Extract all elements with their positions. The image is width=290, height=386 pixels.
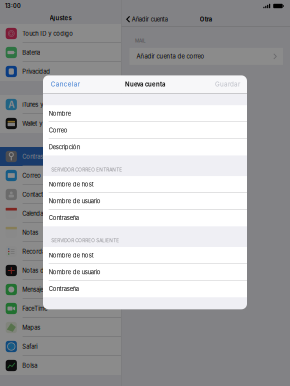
staticText: Añadir cuenta de correo — [136, 53, 204, 60]
staticText: Mapas — [22, 324, 40, 331]
staticText: Otra — [200, 16, 212, 23]
staticText: Nombre — [49, 110, 71, 117]
button[interactable]: Contraseñas y cuentas — [0, 147, 121, 166]
staticText: A — [8, 99, 14, 110]
staticText: FaceTime — [22, 305, 47, 312]
staticText: Contactos — [22, 191, 50, 198]
staticText: Touch ID y código — [22, 30, 73, 37]
button[interactable]: A — [0, 95, 121, 114]
button[interactable]: Notas de voz — [0, 261, 121, 280]
button[interactable]: Safari — [0, 337, 121, 356]
staticText: Notas de voz — [22, 267, 58, 274]
staticText: Correo — [49, 127, 68, 134]
button[interactable]: Privacidad — [0, 62, 121, 81]
button[interactable]: Guardar — [215, 80, 240, 88]
button[interactable]: Cancelar — [51, 80, 80, 88]
staticText: Correo — [22, 172, 41, 179]
staticText: Recordatorios — [22, 248, 61, 255]
staticText: Contraseña — [49, 214, 79, 221]
staticText: iTunes y App Store — [22, 101, 74, 108]
staticText: Contraseña — [49, 285, 79, 292]
staticText: Calendario — [22, 210, 50, 217]
button[interactable]: Bolsa — [0, 356, 121, 375]
button[interactable]: Mensajes — [0, 280, 121, 299]
staticText: Cancelar — [51, 80, 80, 88]
button[interactable]: Wallet y Apple Pay — [0, 114, 121, 133]
staticText: 13:00 — [5, 3, 21, 9]
button[interactable]: Mapas — [0, 318, 121, 337]
button[interactable]: Notas — [0, 223, 121, 242]
button[interactable]: Touch ID y código — [0, 24, 121, 43]
staticText: Batería — [22, 49, 40, 56]
button[interactable]: FaceTime — [0, 299, 121, 318]
staticText: Añadir cuenta — [132, 16, 168, 23]
staticText: Nombre de usuario — [49, 198, 101, 205]
staticText: Contraseñas y cuentas — [22, 153, 82, 160]
staticText: Descripción — [49, 143, 80, 151]
staticText: Mensajes — [22, 286, 46, 293]
button[interactable]: Contactos — [0, 185, 121, 204]
button[interactable]: Batería — [0, 43, 121, 62]
button[interactable]: Recordatorios — [0, 242, 121, 261]
staticText: Notas — [22, 229, 38, 236]
button[interactable]: Calendario — [0, 204, 121, 223]
staticText: Privacidad — [22, 68, 50, 75]
staticText: Wallet y Apple Pay — [22, 120, 72, 127]
staticText: Nombre de host — [49, 181, 94, 188]
button[interactable]: Añadir cuenta — [126, 16, 168, 23]
staticText: MAIL — [135, 38, 146, 44]
staticText: SERVIDOR CORREO SALIENTE — [51, 238, 119, 243]
staticText: SERVIDOR CORREO ENTRANTE — [51, 167, 122, 172]
staticText: Nueva cuenta — [125, 81, 165, 88]
staticText: Safari — [22, 343, 37, 350]
staticText: Ajustes — [49, 14, 71, 22]
staticText: Bolsa — [22, 362, 37, 369]
staticText: Guardar — [215, 80, 240, 88]
button[interactable]: Correo — [0, 166, 121, 185]
staticText: Nombre de host — [49, 252, 94, 259]
button[interactable]: Añadir cuenta de correo — [129, 48, 283, 65]
staticText: Nombre de usuario — [49, 269, 101, 276]
